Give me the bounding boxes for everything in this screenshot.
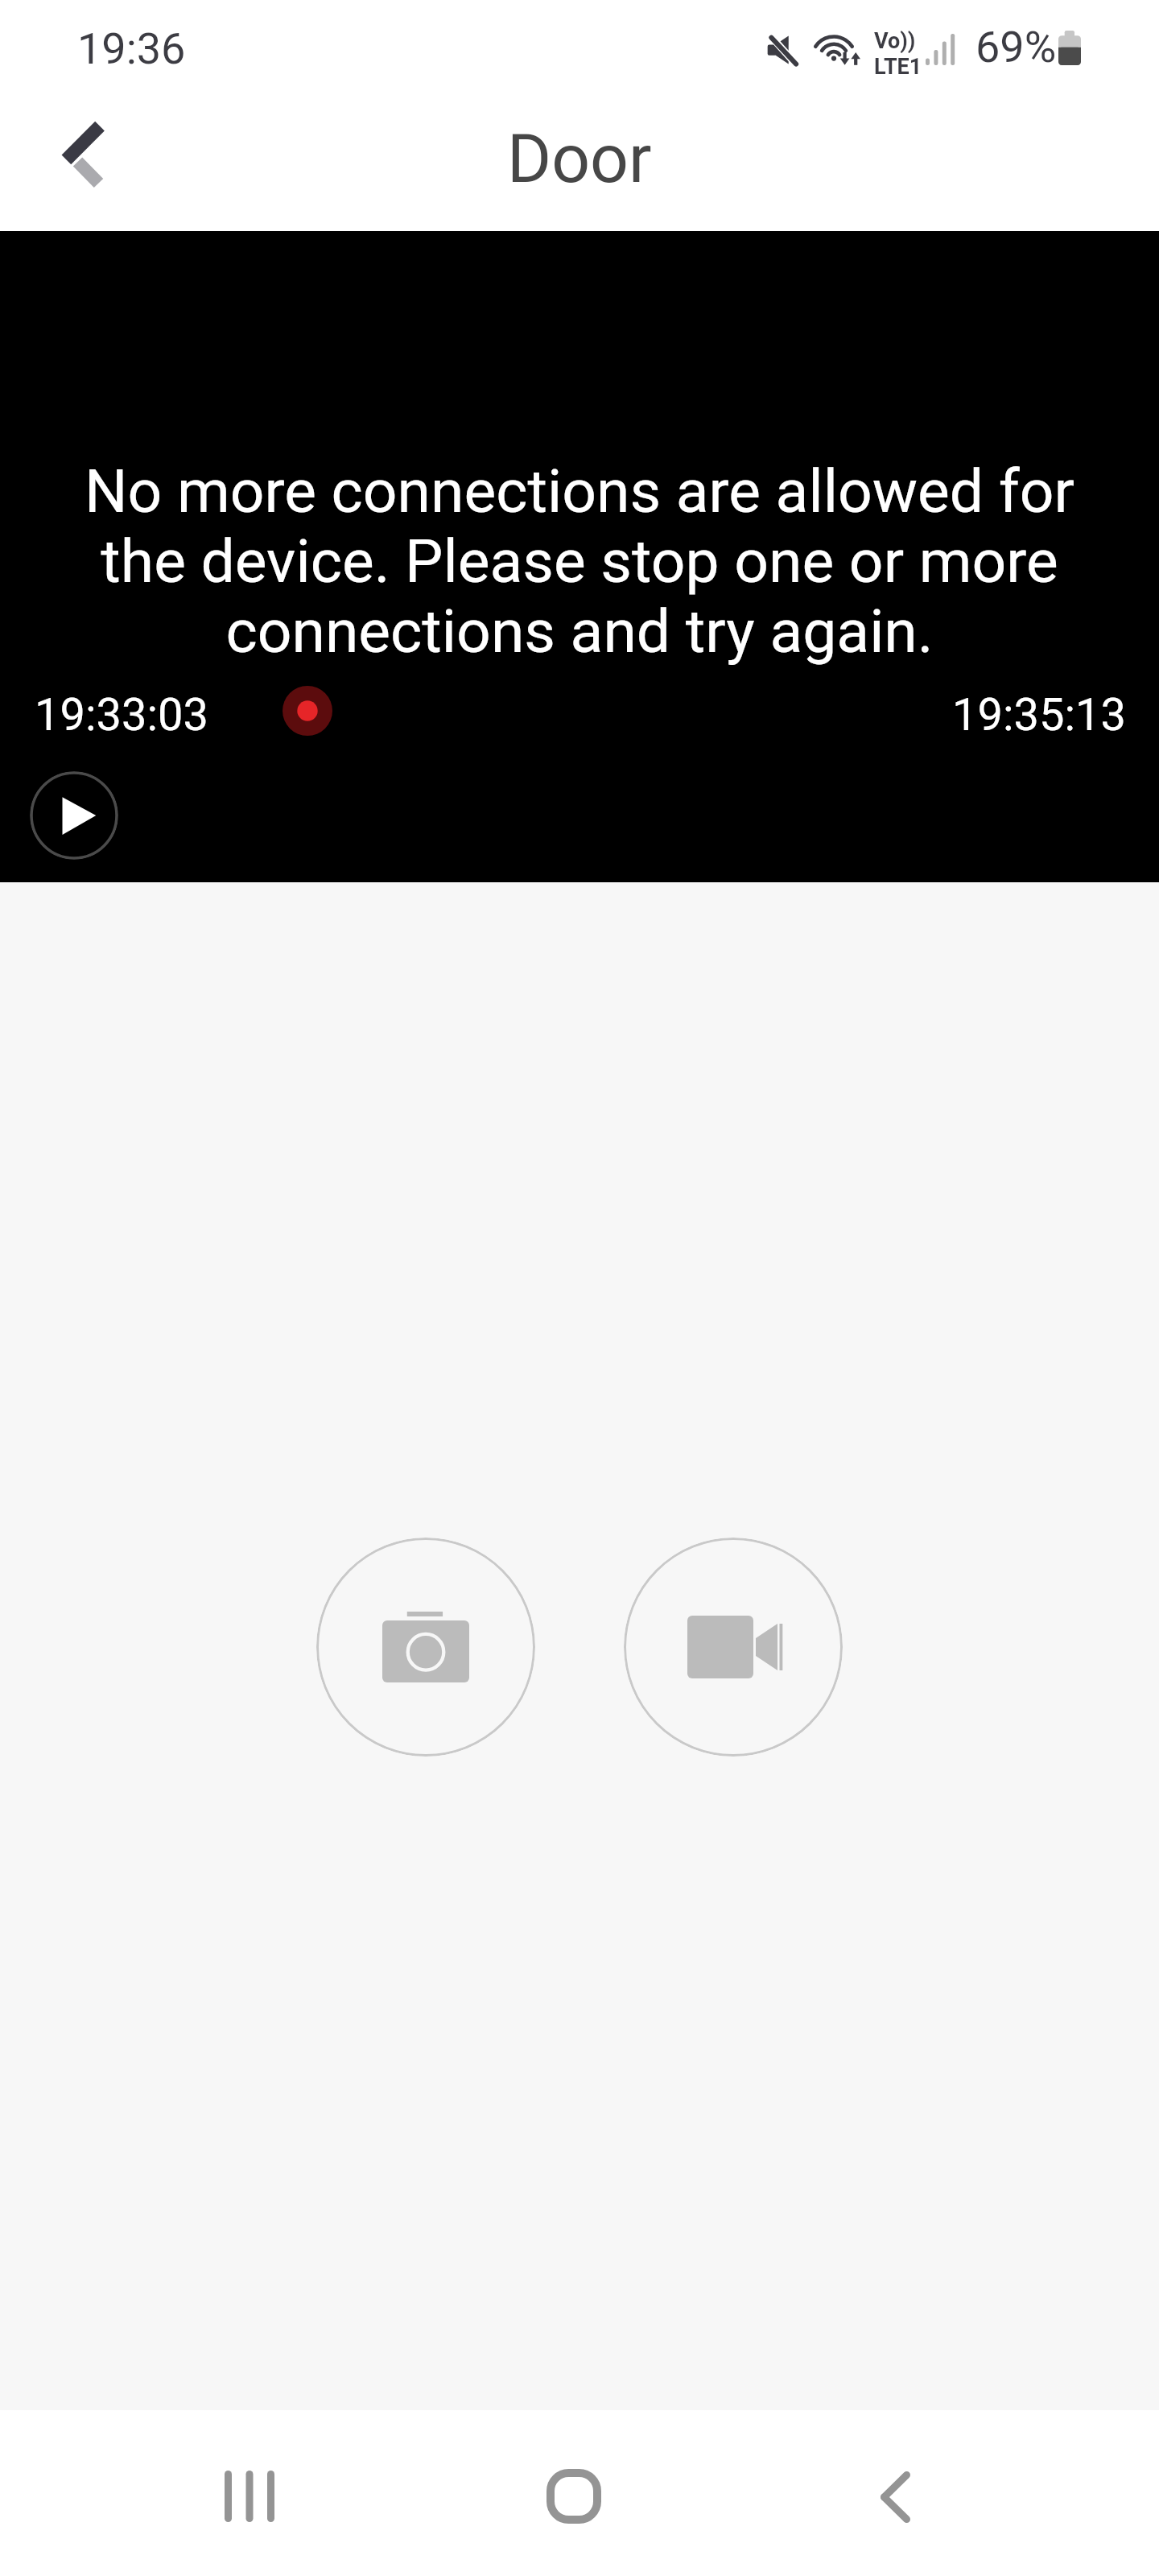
staticText: Door — [507, 119, 652, 198]
staticText: No more connections are allowed for the … — [0, 456, 1159, 667]
staticText: 19:36 — [77, 23, 186, 74]
button[interactable]: Play — [30, 771, 118, 860]
staticText: LTE1 — [874, 54, 922, 80]
staticText: Vo)) — [874, 28, 916, 54]
button[interactable]: Record video — [624, 1538, 843, 1757]
staticText: 19:33:03 — [35, 688, 208, 741]
staticText: 19:35:13 — [952, 688, 1126, 741]
button[interactable]: Back — [20, 118, 125, 222]
button[interactable]: Take snapshot — [316, 1538, 535, 1757]
button[interactable]: Back — [798, 2417, 992, 2576]
button[interactable]: Recents — [153, 2417, 346, 2576]
button[interactable]: Home — [477, 2417, 670, 2576]
staticText: 69% — [975, 22, 1057, 72]
